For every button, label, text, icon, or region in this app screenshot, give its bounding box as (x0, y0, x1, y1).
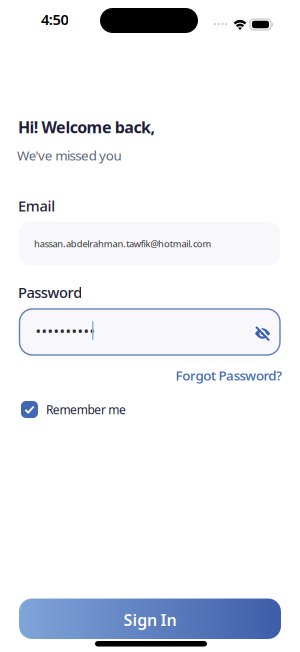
secureTextField[interactable]: password12 (35, 321, 130, 341)
staticText: Sign In (124, 609, 176, 630)
staticText: Password (18, 282, 82, 302)
button[interactable]: Forgot Password? (175, 366, 282, 384)
staticText: Forgot Password? (175, 366, 282, 384)
staticText: 4:50 (41, 9, 68, 29)
staticText: We've missed you (17, 146, 121, 164)
staticText: Email (18, 196, 55, 215)
staticText: •••••••••• (35, 321, 95, 341)
staticText: Hi! Welcome back, (18, 116, 155, 138)
textField[interactable]: hassan.abdelrahman.tawfik@hotmail.com (34, 237, 274, 250)
staticText: hassan.abdelrahman.tawfik@hotmail.com (34, 237, 212, 250)
button[interactable]: Sign In (19, 598, 281, 639)
staticText: Remember me (46, 401, 126, 417)
button[interactable]: Show password (254, 326, 270, 341)
button[interactable]: Remember me (21, 401, 126, 418)
